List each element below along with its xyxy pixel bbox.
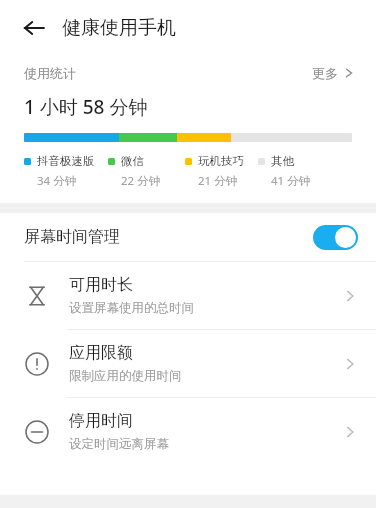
staticText: 更多 [312, 65, 338, 81]
staticText: 抖音极速版 [37, 154, 95, 168]
staticText: 限制应用的使用时间 [69, 368, 182, 384]
button[interactable]: 可用时长 [0, 262, 376, 329]
button[interactable]: 更多 [310, 61, 356, 85]
staticText: 微信 [121, 154, 144, 168]
staticText: 其他 [271, 154, 294, 168]
button[interactable]: 屏幕时间管理 [0, 213, 376, 261]
button[interactable]: 停用时间 [0, 398, 376, 465]
staticText: 可用时长 [69, 275, 133, 295]
staticText: 玩机技巧 [198, 154, 244, 168]
staticText: 设置屏幕使用的总时间 [69, 300, 194, 316]
staticText: 应用限额 [69, 343, 133, 363]
button[interactable]: 应用限额 [0, 330, 376, 397]
staticText: 设定时间远离屏幕 [69, 436, 169, 452]
staticText: 使用统计 [24, 65, 76, 81]
staticText: 34 分钟 [37, 173, 77, 189]
staticText: 22 分钟 [121, 173, 161, 189]
button[interactable]: Screen time management toggle [313, 225, 358, 250]
staticText: 健康使用手机 [62, 16, 176, 40]
staticText: 停用时间 [69, 411, 133, 431]
staticText: 41 分钟 [271, 173, 311, 189]
button[interactable]: Back [14, 8, 54, 48]
staticText: 1 小时 58 分钟 [24, 94, 148, 120]
staticText: 21 分钟 [198, 173, 238, 189]
staticText: 屏幕时间管理 [24, 227, 120, 247]
